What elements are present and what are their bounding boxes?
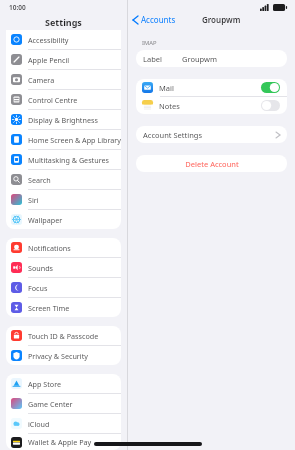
button[interactable]: Touch ID & Passcode xyxy=(6,326,121,345)
staticText: Display & Brightness xyxy=(28,115,98,125)
staticText: Groupwm xyxy=(202,14,241,25)
staticText: IMAP xyxy=(142,39,157,47)
button[interactable]: Wallet & Apple Pay xyxy=(6,434,121,450)
button[interactable]: Wallpaper xyxy=(6,210,121,229)
button[interactable]: Multitasking & Gestures xyxy=(6,150,121,169)
button[interactable]: iCloud xyxy=(6,414,121,433)
staticText: Game Center xyxy=(28,399,73,409)
staticText: 10:00 xyxy=(9,3,26,12)
staticText: Home Screen & App Library xyxy=(28,135,121,145)
staticText: Account Settings xyxy=(143,130,276,140)
staticText: Camera xyxy=(28,75,55,85)
staticText: Label xyxy=(143,54,162,64)
button[interactable]: Account Settings xyxy=(136,126,287,143)
staticText: Wallpaper xyxy=(28,215,63,225)
staticText: Touch ID & Passcode xyxy=(28,331,99,341)
staticText: Apple Pencil xyxy=(28,55,70,65)
staticText: Accounts xyxy=(141,14,176,25)
button[interactable]: Accounts xyxy=(128,12,180,27)
staticText: Delete Account xyxy=(185,159,239,169)
button[interactable]: Notifications xyxy=(6,238,121,257)
staticText: Search xyxy=(28,175,51,185)
button[interactable]: Search xyxy=(6,170,121,189)
staticText: Notes xyxy=(159,101,261,111)
button[interactable]: Label xyxy=(136,50,287,67)
staticText: Control Centre xyxy=(28,95,78,105)
staticText: Focus xyxy=(28,283,48,293)
staticText: Multitasking & Gestures xyxy=(28,155,109,165)
staticText: Accessibility xyxy=(28,35,69,45)
button[interactable]: Focus xyxy=(6,278,121,297)
staticText: Settings xyxy=(45,16,82,28)
button[interactable]: Game Center xyxy=(6,394,121,413)
staticText: Screen Time xyxy=(28,303,70,313)
staticText: Wallet & Apple Pay xyxy=(28,437,92,447)
staticText: Groupwm xyxy=(182,54,217,64)
button[interactable]: Sounds xyxy=(6,258,121,277)
button[interactable]: Display & Brightness xyxy=(6,110,121,129)
staticText: Mail xyxy=(159,83,261,93)
button[interactable]: Home Screen & App Library xyxy=(6,130,121,149)
button[interactable]: Apple Pencil xyxy=(6,50,121,69)
staticText: App Store xyxy=(28,379,62,389)
button[interactable]: Siri xyxy=(6,190,121,209)
button[interactable]: Mail xyxy=(136,79,287,96)
button[interactable]: App Store xyxy=(6,374,121,393)
button[interactable]: Control Centre xyxy=(6,90,121,109)
staticText: iCloud xyxy=(28,419,50,429)
staticText: Siri xyxy=(28,195,39,205)
button[interactable]: Privacy & Security xyxy=(6,346,121,365)
staticText: Notifications xyxy=(28,243,71,253)
button[interactable]: Delete Account xyxy=(136,155,287,172)
staticText: Privacy & Security xyxy=(28,351,88,361)
button[interactable]: Notes xyxy=(136,97,287,114)
button[interactable]: Camera xyxy=(6,70,121,89)
button[interactable]: Accessibility xyxy=(6,30,121,49)
staticText: Sounds xyxy=(28,263,54,273)
button[interactable]: Screen Time xyxy=(6,298,121,317)
